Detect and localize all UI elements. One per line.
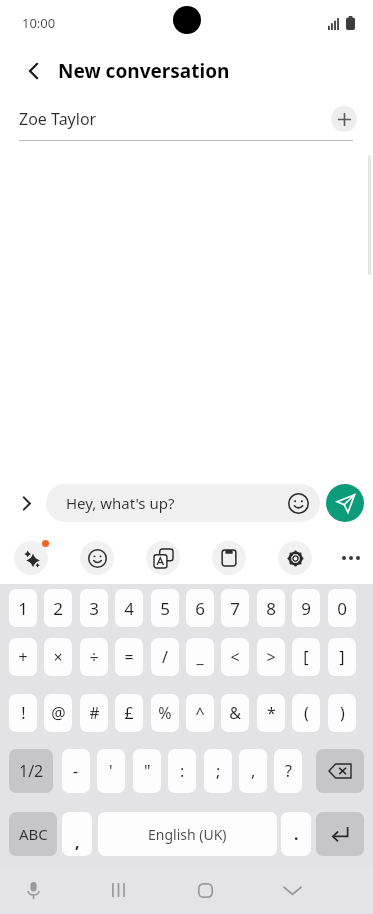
button[interactable]: 5 xyxy=(151,589,179,627)
staticText: × xyxy=(53,646,63,668)
button[interactable]: 2 xyxy=(44,589,72,627)
button[interactable]: ^ xyxy=(186,694,214,732)
button[interactable]: £ xyxy=(115,694,143,732)
button[interactable]: 7 xyxy=(221,589,249,627)
button[interactable]: = xyxy=(115,638,143,676)
button[interactable]: Enter xyxy=(316,812,364,856)
button[interactable]: ! xyxy=(9,694,37,732)
staticText: £ xyxy=(124,702,134,724)
staticText: 5 xyxy=(160,597,170,620)
button[interactable]: , xyxy=(239,749,267,793)
button[interactable]: - xyxy=(62,749,90,793)
staticText: English (UK) xyxy=(148,825,227,844)
button[interactable]: ( xyxy=(292,694,320,732)
staticText: ) xyxy=(340,702,345,724)
button[interactable]: % xyxy=(151,694,179,732)
staticText: ] xyxy=(339,646,345,668)
staticText: _ xyxy=(196,646,204,668)
button[interactable]: 4 xyxy=(115,589,143,627)
button[interactable]: ? xyxy=(274,749,302,793)
staticText: 7 xyxy=(230,597,240,620)
staticText: Hey, what's up? xyxy=(66,493,286,513)
button[interactable]: * xyxy=(257,694,285,732)
button[interactable]: 0 xyxy=(328,589,356,627)
staticText: 4 xyxy=(124,597,134,620)
button[interactable]: Send xyxy=(326,484,364,522)
button[interactable]: English (UK) xyxy=(98,812,277,856)
staticText: < xyxy=(230,646,240,668)
button[interactable]: ) xyxy=(328,694,356,732)
button[interactable]: ' xyxy=(97,749,125,793)
button[interactable]: Home xyxy=(185,870,225,910)
button[interactable]: _ xyxy=(186,638,214,676)
staticText: Zoe Taylor xyxy=(19,108,331,130)
button[interactable]: Hide keyboard xyxy=(272,870,312,910)
staticText: : xyxy=(180,760,185,782)
button[interactable]: ABC xyxy=(9,812,57,856)
staticText: , xyxy=(251,760,256,782)
staticText: & xyxy=(229,702,241,724)
button[interactable]: More options xyxy=(334,541,368,575)
button[interactable]: > xyxy=(257,638,285,676)
button[interactable]: Add recipient xyxy=(331,106,357,132)
staticText: 1/2 xyxy=(19,760,44,782)
staticText: 6 xyxy=(195,597,205,620)
button[interactable]: 3 xyxy=(80,589,108,627)
button[interactable]: & xyxy=(221,694,249,732)
staticText: / xyxy=(162,646,168,668)
button[interactable]: / xyxy=(151,638,179,676)
staticText: 3 xyxy=(89,597,99,620)
staticText: @ xyxy=(51,702,66,724)
staticText: 1 xyxy=(18,597,28,620)
button[interactable]: # xyxy=(80,694,108,732)
button[interactable]: AI suggestions xyxy=(14,541,48,575)
button[interactable]: Emoji xyxy=(80,541,114,575)
button[interactable]: ; xyxy=(204,749,232,793)
staticText: ? xyxy=(285,760,292,782)
staticText: = xyxy=(124,646,134,668)
staticText: ' xyxy=(109,760,113,782)
button[interactable]: 8 xyxy=(257,589,285,627)
button[interactable]: Voice input xyxy=(14,871,52,909)
button[interactable]: < xyxy=(221,638,249,676)
button[interactable]: Hey, what's up? xyxy=(46,484,320,522)
button[interactable]: : xyxy=(168,749,196,793)
button[interactable]: Back xyxy=(14,51,54,91)
staticText: 8 xyxy=(266,597,276,620)
button[interactable]: + xyxy=(9,638,37,676)
staticText: + xyxy=(18,646,28,668)
button[interactable]: × xyxy=(44,638,72,676)
button[interactable]: Recents xyxy=(98,870,138,910)
button[interactable]: Backspace xyxy=(316,749,364,793)
button[interactable]: Emoji xyxy=(286,491,310,515)
staticText: 10:00 xyxy=(22,14,56,32)
button[interactable]: ÷ xyxy=(80,638,108,676)
button[interactable]: Translate xyxy=(146,541,180,575)
button[interactable]: 9 xyxy=(292,589,320,627)
button[interactable]: Settings xyxy=(278,541,312,575)
button[interactable]: [ xyxy=(292,638,320,676)
button[interactable]: " xyxy=(133,749,161,793)
staticText: , xyxy=(75,831,80,853)
staticText: 2 xyxy=(53,597,63,620)
staticText: 0 xyxy=(337,597,347,620)
button[interactable]: Clipboard xyxy=(212,541,246,575)
button[interactable]: , xyxy=(62,812,92,856)
staticText: ABC xyxy=(19,824,48,844)
button[interactable]: @ xyxy=(44,694,72,732)
staticText: ; xyxy=(216,760,221,782)
staticText: New conversation xyxy=(58,58,230,84)
staticText: # xyxy=(89,702,100,724)
button[interactable]: . xyxy=(281,812,311,856)
button[interactable]: Expand xyxy=(8,485,44,521)
staticText: * xyxy=(267,702,276,724)
button[interactable]: 1/2 xyxy=(9,749,53,793)
button[interactable]: 6 xyxy=(186,589,214,627)
staticText: ^ xyxy=(195,702,205,724)
staticText: % xyxy=(158,702,172,724)
staticText: [ xyxy=(303,646,309,668)
button[interactable]: 1 xyxy=(9,589,37,627)
staticText: ÷ xyxy=(89,646,99,668)
button[interactable]: ] xyxy=(328,638,356,676)
staticText: ( xyxy=(304,702,309,724)
